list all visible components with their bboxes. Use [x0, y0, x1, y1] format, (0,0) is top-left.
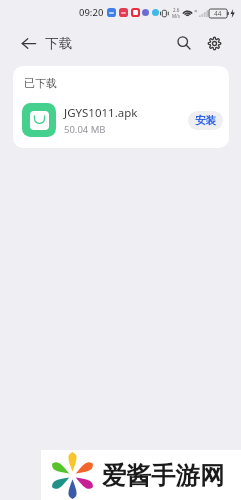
button[interactable]: Search: [167, 26, 201, 60]
staticText: ×: [194, 7, 198, 15]
staticText: 09:20: [79, 6, 104, 19]
staticText: 已下载: [24, 76, 57, 90]
staticText: 50.04 MB: [64, 123, 106, 136]
staticText: JGYS1011.apk: [64, 105, 138, 121]
staticText: 安装: [195, 114, 216, 127]
staticText: 44: [214, 9, 222, 18]
staticText: 2.6: [173, 7, 180, 13]
button[interactable]: Settings: [197, 26, 231, 60]
staticText: M/s: [172, 13, 180, 19]
button[interactable]: 安装: [188, 111, 223, 130]
button[interactable]: Back: [11, 26, 45, 60]
button[interactable]: JGYS1011.apk: [13, 96, 229, 144]
staticText: 下载: [45, 35, 72, 52]
staticText: 爱酱手游网: [102, 460, 225, 491]
